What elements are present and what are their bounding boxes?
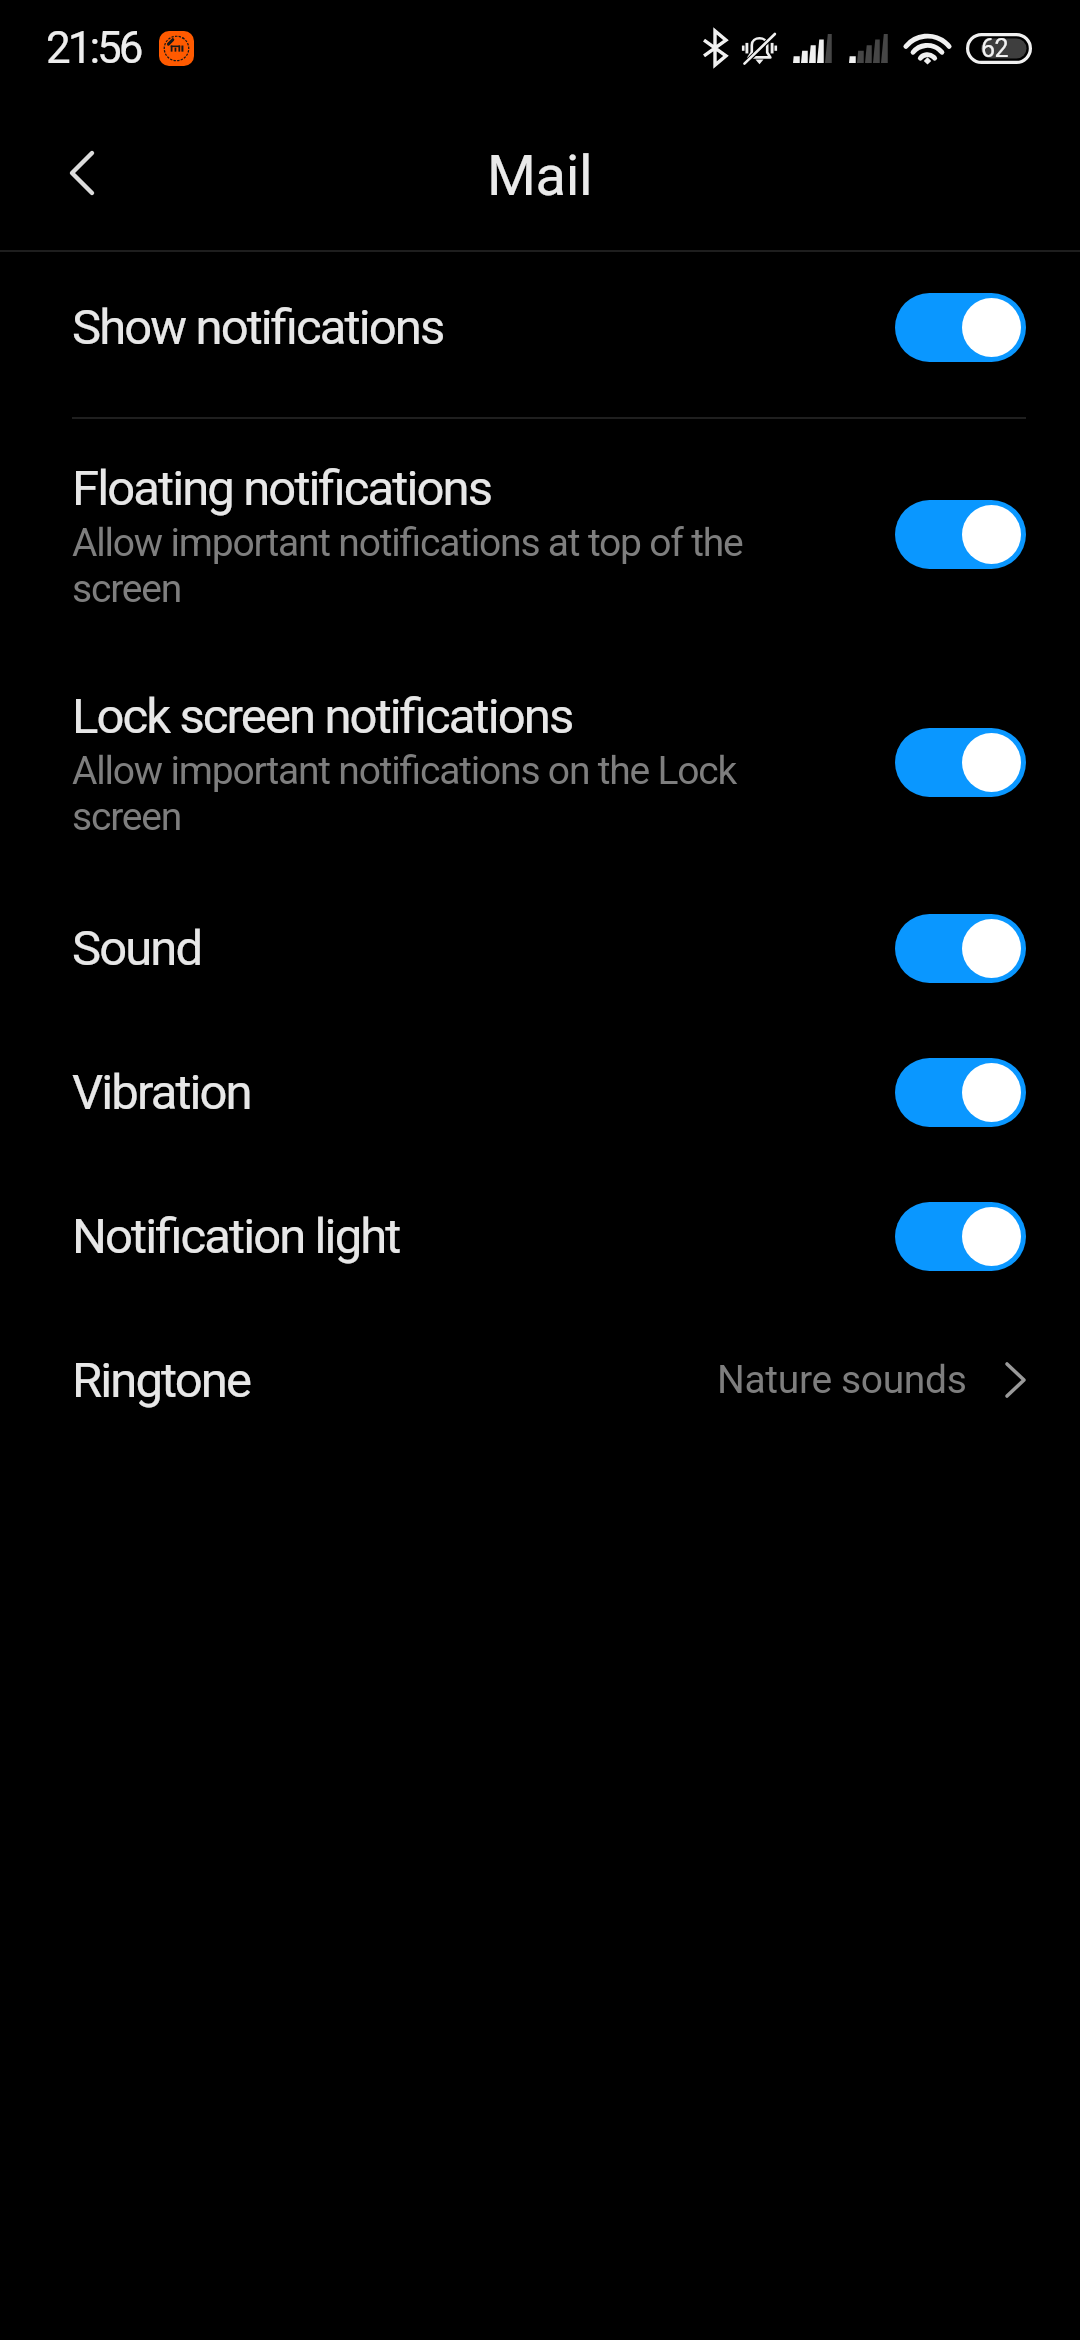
other: Battery 62 percent <box>966 33 1032 64</box>
button[interactable]: Floating notifications <box>0 420 1080 648</box>
staticText: Vibration <box>72 1064 251 1121</box>
staticText: Show notifications <box>72 299 444 356</box>
other: Bluetooth <box>704 31 726 65</box>
other: Wi-Fi <box>906 33 949 64</box>
button[interactable]: Enabled <box>895 500 1026 569</box>
button[interactable]: Ringtone <box>0 1308 1080 1452</box>
button[interactable]: Vibration <box>0 1020 1080 1164</box>
other: Mi app <box>159 31 194 66</box>
other: Silent mode <box>742 32 777 65</box>
button[interactable]: Show notifications <box>0 254 1080 400</box>
other: Mobile signal <box>849 34 889 63</box>
button[interactable]: Enabled <box>895 293 1026 362</box>
button[interactable]: Notification light <box>0 1164 1080 1308</box>
staticText: Notification light <box>72 1208 400 1265</box>
button[interactable]: Lock screen notifications <box>0 648 1080 876</box>
staticText: Nature sounds <box>717 1357 967 1403</box>
staticText: Mail <box>487 143 593 209</box>
button[interactable]: Enabled <box>895 1202 1026 1271</box>
button[interactable]: Back <box>34 125 130 221</box>
other: Mobile signal <box>793 34 833 63</box>
staticText: 62 <box>981 34 1009 63</box>
staticText: Sound <box>72 920 202 977</box>
staticText: Allow important notifications on the Loc… <box>72 748 737 840</box>
staticText: Lock screen notifications <box>72 688 573 745</box>
button[interactable]: Enabled <box>895 1058 1026 1127</box>
button[interactable]: Sound <box>0 876 1080 1020</box>
staticText: Ringtone <box>72 1352 251 1409</box>
staticText: Allow important notifications at top of … <box>72 520 743 612</box>
staticText: Floating notifications <box>72 460 492 517</box>
button[interactable]: Enabled <box>895 728 1026 797</box>
button[interactable]: Enabled <box>895 914 1026 983</box>
staticText: 21:56 <box>46 22 141 74</box>
